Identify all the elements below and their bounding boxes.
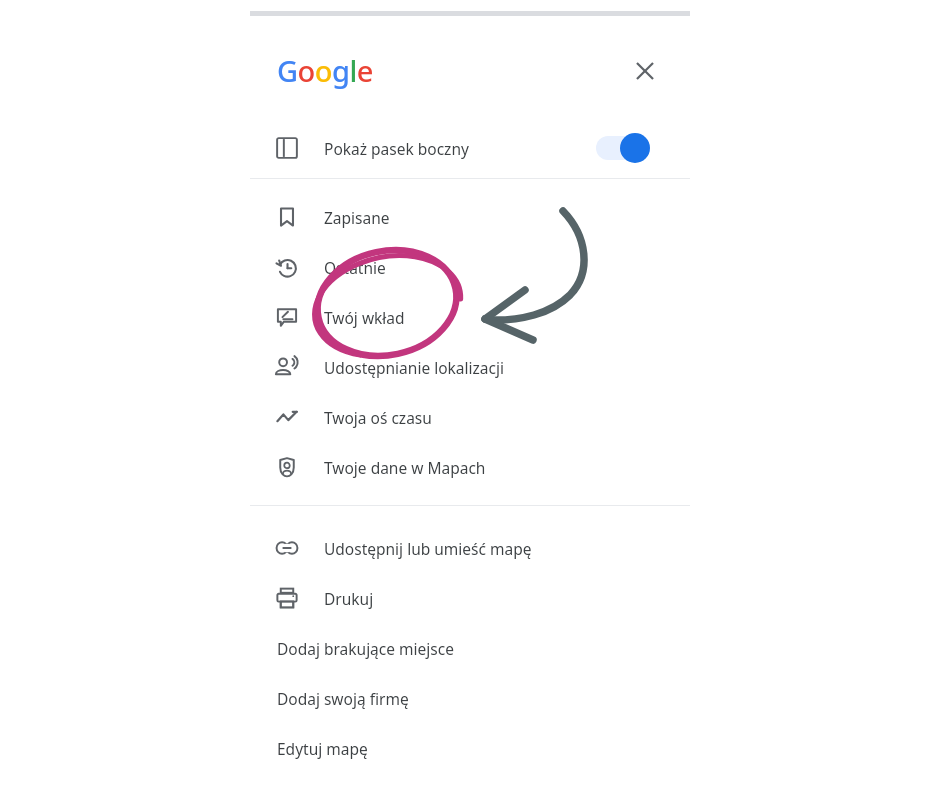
- staticText: Ostatnie: [324, 257, 386, 278]
- button[interactable]: Dodaj swoją firmę: [250, 673, 690, 723]
- button[interactable]: Twoje dane w Mapach: [250, 442, 690, 492]
- staticText: Zapisane: [324, 207, 390, 228]
- staticText: Twoja oś czasu: [324, 407, 432, 428]
- button[interactable]: Google: [277, 51, 373, 90]
- button[interactable]: Dodaj brakujące miejsce: [250, 623, 690, 673]
- staticText: Udostępnianie lokalizacji: [324, 357, 504, 378]
- staticText: Twoje dane w Mapach: [324, 457, 486, 478]
- staticText: Dodaj brakujące miejsce: [277, 638, 454, 659]
- button[interactable]: Twoja oś czasu: [250, 392, 690, 442]
- button[interactable]: Ostatnie: [250, 242, 690, 292]
- button[interactable]: Zapisane: [250, 192, 690, 242]
- staticText: Udostępnij lub umieść mapę: [324, 538, 532, 559]
- button[interactable]: Edytuj mapę: [250, 723, 690, 773]
- staticText: Google: [277, 51, 373, 90]
- staticText: Twój wkład: [324, 307, 405, 328]
- button[interactable]: Udostępnianie lokalizacji: [250, 342, 690, 392]
- staticText: Pokaż pasek boczny: [324, 138, 469, 159]
- staticText: Drukuj: [324, 588, 374, 609]
- button[interactable]: Drukuj: [250, 573, 690, 623]
- staticText: Dodaj swoją firmę: [277, 688, 409, 709]
- button[interactable]: Zamknij: [629, 55, 661, 87]
- button[interactable]: Twój wkład: [250, 292, 690, 342]
- staticText: Edytuj mapę: [277, 738, 368, 759]
- button[interactable]: Pokaż pasek boczny: [250, 119, 690, 177]
- button[interactable]: Udostępnij lub umieść mapę: [250, 523, 690, 573]
